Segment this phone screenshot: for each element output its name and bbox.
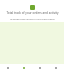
button[interactable]: [32, 64, 48, 72]
button[interactable]: [0, 64, 16, 72]
staticText: Total track of your orders and activity: [6, 11, 59, 15]
button[interactable]: [48, 64, 64, 72]
button[interactable]: [16, 64, 32, 72]
staticText: Manage everything in one place easily: [10, 17, 55, 20]
